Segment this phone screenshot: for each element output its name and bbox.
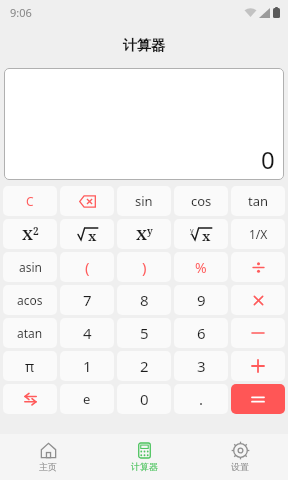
staticText: 5 [140, 323, 149, 343]
staticText: 0 [261, 143, 275, 176]
button[interactable]: e [60, 384, 114, 414]
staticText: sin [135, 192, 153, 210]
button[interactable]: 1/X [231, 219, 285, 249]
button[interactable]: asin [3, 252, 57, 282]
button[interactable]: Divide [231, 252, 285, 282]
staticText: 3 [197, 356, 206, 376]
button[interactable]: 设置 [192, 434, 288, 480]
staticText: x [202, 227, 211, 244]
button[interactable]: Multiply [231, 285, 285, 315]
staticText: 8 [140, 290, 149, 310]
staticText: asin [19, 259, 42, 275]
button[interactable]: Square root [60, 219, 114, 249]
staticText: Xy [136, 224, 153, 244]
staticText: acos [17, 292, 43, 308]
staticText: y [190, 226, 194, 236]
button[interactable]: π [3, 351, 57, 381]
staticText: C [26, 193, 34, 209]
staticText: 6 [197, 323, 206, 343]
staticText: tan [248, 192, 269, 210]
button[interactable]: Subtract [231, 318, 285, 348]
staticText: 1/X [249, 226, 268, 242]
button[interactable]: C [3, 186, 57, 216]
staticText: ) [142, 257, 147, 277]
button[interactable]: % [174, 252, 228, 282]
button[interactable]: 1 [60, 351, 114, 381]
button[interactable]: atan [3, 318, 57, 348]
staticText: 9:06 [10, 5, 32, 20]
button[interactable]: acos [3, 285, 57, 315]
staticText: 7 [83, 290, 92, 310]
button[interactable]: 0 [117, 384, 171, 414]
staticText: cos [191, 192, 212, 210]
staticText: π [25, 357, 35, 376]
button[interactable]: X to the power of y [117, 219, 171, 249]
staticText: 0 [140, 389, 149, 409]
staticText: atan [17, 325, 43, 341]
button[interactable]: . [174, 384, 228, 414]
button[interactable]: ( [60, 252, 114, 282]
button[interactable]: 主页 [0, 434, 96, 480]
button[interactable]: 4 [60, 318, 114, 348]
staticText: 2 [140, 356, 149, 376]
button[interactable]: 9 [174, 285, 228, 315]
button[interactable]: Equals [231, 384, 285, 414]
button[interactable]: Nth root [174, 219, 228, 249]
staticText: 9 [197, 290, 206, 310]
button[interactable]: ) [117, 252, 171, 282]
staticText: % [195, 258, 207, 277]
button[interactable]: 2 [117, 351, 171, 381]
button[interactable]: Add [231, 351, 285, 381]
button[interactable]: 7 [60, 285, 114, 315]
button[interactable]: 3 [174, 351, 228, 381]
staticText: 计算器 [131, 461, 158, 472]
staticText: 4 [83, 323, 92, 343]
button[interactable]: X squared [3, 219, 57, 249]
button[interactable]: 6 [174, 318, 228, 348]
staticText: x [88, 227, 97, 244]
staticText: . [199, 389, 204, 409]
button[interactable]: cos [174, 186, 228, 216]
button[interactable]: 8 [117, 285, 171, 315]
staticText: X2 [22, 224, 39, 244]
staticText: 设置 [231, 461, 249, 472]
button[interactable]: sin [117, 186, 171, 216]
button[interactable]: tan [231, 186, 285, 216]
staticText: 1 [83, 356, 92, 376]
staticText: 计算器 [123, 37, 165, 55]
button[interactable]: Swap [3, 384, 57, 414]
staticText: e [83, 390, 91, 408]
button[interactable]: 5 [117, 318, 171, 348]
staticText: 主页 [39, 461, 57, 472]
staticText: ( [85, 257, 90, 277]
button[interactable]: Backspace [60, 186, 114, 216]
button[interactable]: 计算器 [96, 434, 192, 480]
